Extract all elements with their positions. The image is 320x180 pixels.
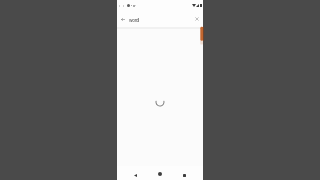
button[interactable]: Clear search [192, 14, 202, 24]
button[interactable]: Scroll position [196, 22, 208, 48]
button[interactable]: Back [118, 14, 128, 24]
staticText: word [129, 17, 139, 23]
button[interactable]: Back [130, 170, 140, 180]
button[interactable]: Home [155, 169, 165, 179]
button[interactable]: Recent apps [179, 170, 189, 180]
